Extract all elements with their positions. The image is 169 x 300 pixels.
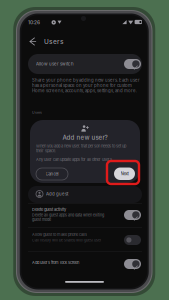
staticText: Delete guest activity [32, 207, 66, 212]
button[interactable]: Allow user switch [0, 0, 169, 300]
staticText: Allow user switch [36, 61, 74, 67]
staticText: Share your phone by adding new users. Ea… [32, 77, 140, 93]
staticText: Add new user? [62, 134, 107, 141]
button[interactable]: Add guest [0, 0, 169, 300]
staticText: Next [120, 171, 128, 176]
button[interactable]: Add users from lock screen [0, 0, 169, 300]
button[interactable]: Back [79, 144, 90, 155]
staticText: Allow guest to make phone calls [32, 232, 87, 237]
button[interactable]: Cancel [68, 144, 100, 156]
staticText: When you add a new user, that person nee… [36, 143, 126, 153]
staticText: 10:26 [28, 20, 40, 25]
staticText: Cancel [45, 171, 58, 177]
button[interactable]: Delete guest activity [0, 0, 169, 300]
staticText: Any user can update apps for all other u… [36, 157, 113, 162]
staticText: Users [32, 110, 42, 115]
button[interactable]: Next [74, 144, 95, 156]
staticText: Add users from lock screen [32, 260, 79, 265]
staticText: Delete all guest apps and data when exit… [32, 213, 104, 222]
staticText: Call history will be shared with guest u… [32, 238, 101, 242]
button[interactable]: Allow guest to make phone calls [0, 0, 169, 300]
staticText: Add guest [46, 191, 68, 197]
staticText: Users [44, 37, 64, 45]
